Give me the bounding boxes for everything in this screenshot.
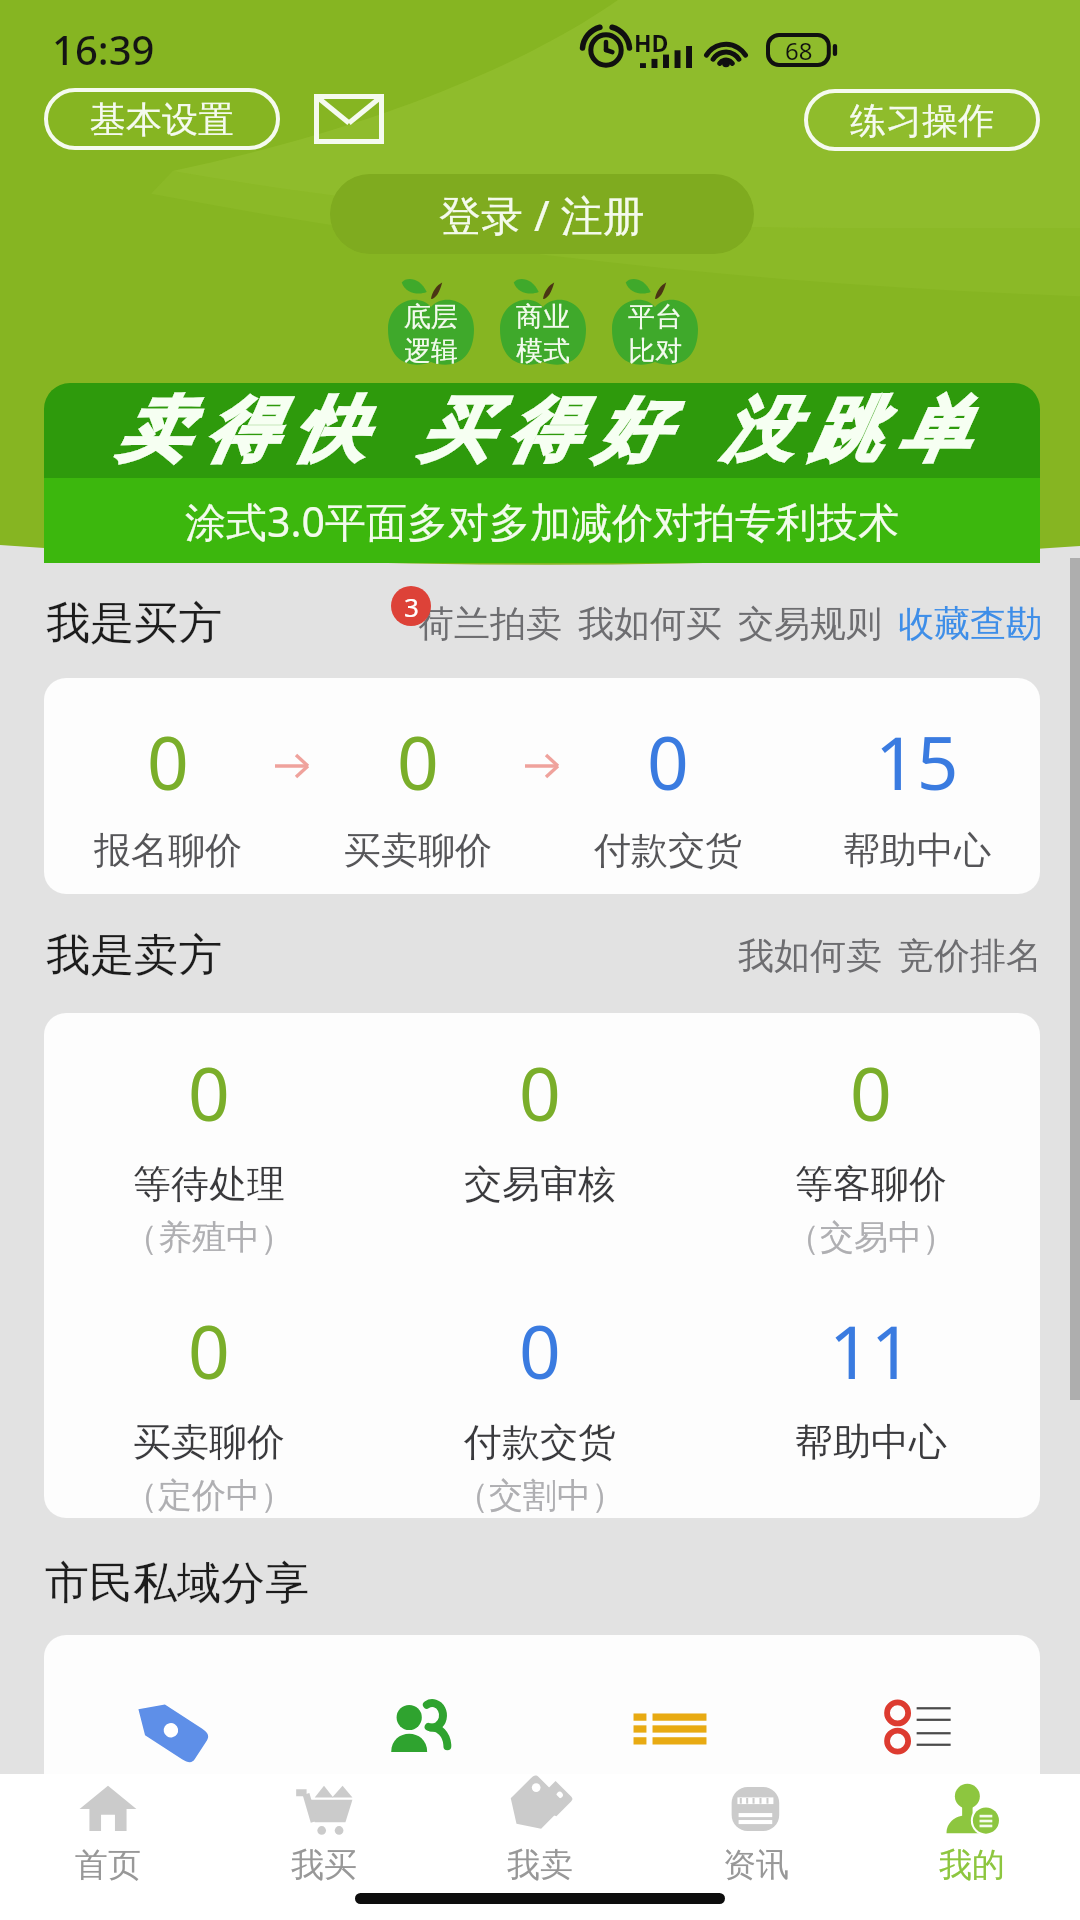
staticText: （交割中）: [455, 1474, 625, 1517]
button[interactable]: 0: [308, 712, 528, 882]
button[interactable]: 0: [58, 712, 278, 882]
staticText: 0: [188, 1043, 230, 1142]
staticText: 16:39: [52, 22, 155, 76]
button[interactable]: 基本设置: [44, 88, 280, 150]
button[interactable]: 收藏查勘: [898, 601, 1042, 646]
staticText: HD: [634, 27, 669, 58]
staticText: 比对: [628, 334, 682, 368]
button[interactable]: 15: [807, 712, 1027, 882]
staticText: 0: [519, 1043, 561, 1142]
button[interactable]: 登录 / 注册: [330, 174, 754, 254]
staticText: 帮助中心: [843, 827, 991, 874]
button[interactable]: 0: [731, 1043, 1011, 1273]
staticText: 登录 / 注册: [439, 186, 645, 243]
button[interactable]: 资讯: [656, 1780, 856, 1896]
staticText: （养殖中）: [124, 1216, 294, 1259]
staticText: 帮助中心: [795, 1418, 947, 1466]
button[interactable]: 我卖: [440, 1780, 640, 1896]
staticText: 涂式3.0平面多对多加减价对拍专利技术: [185, 493, 899, 549]
button[interactable]: 0: [69, 1043, 349, 1273]
staticText: 0: [647, 712, 689, 811]
button[interactable]: 我如何买: [578, 601, 722, 646]
staticText: 我是卖方: [46, 928, 222, 983]
button[interactable]: Group: [384, 1693, 456, 1765]
button[interactable]: Ranking: [884, 1695, 952, 1759]
staticText: 卖得快: [108, 387, 372, 475]
staticText: 68: [785, 34, 813, 67]
staticText: 0: [147, 712, 189, 811]
staticText: 3: [404, 589, 419, 624]
staticText: （交易中）: [786, 1216, 956, 1259]
button[interactable]: 商业: [500, 278, 586, 366]
staticText: 平台: [628, 300, 682, 334]
staticText: 等客聊价: [795, 1160, 947, 1208]
button[interactable]: 底层: [388, 278, 474, 366]
staticText: 付款交货: [594, 827, 742, 874]
staticText: 资讯: [723, 1844, 789, 1886]
staticText: 我是买方: [46, 596, 222, 651]
staticText: 没跳单: [712, 387, 976, 475]
staticText: （定价中）: [124, 1474, 294, 1517]
staticText: 0: [519, 1301, 561, 1400]
staticText: 首页: [75, 1844, 141, 1886]
staticText: 0: [188, 1301, 230, 1400]
staticText: 买卖聊价: [344, 827, 492, 874]
button[interactable]: 0: [558, 712, 778, 882]
staticText: 付款交货: [464, 1418, 616, 1466]
staticText: 模式: [516, 334, 570, 368]
button[interactable]: 0: [69, 1301, 349, 1518]
staticText: 0: [850, 1043, 892, 1142]
button[interactable]: 练习操作: [804, 89, 1040, 151]
staticText: 买得好: [410, 387, 674, 475]
staticText: 我的: [939, 1844, 1005, 1886]
staticText: 我买: [291, 1844, 357, 1886]
staticText: 报名聊价: [94, 827, 242, 874]
staticText: 等待处理: [133, 1160, 285, 1208]
staticText: 基本设置: [90, 97, 234, 142]
button[interactable]: Tag: [131, 1691, 207, 1767]
button[interactable]: 11: [731, 1301, 1011, 1518]
button[interactable]: 我如何卖: [738, 933, 882, 978]
button[interactable]: 我的: [872, 1780, 1072, 1896]
button[interactable]: 0: [400, 1301, 680, 1518]
staticText: 0: [397, 712, 439, 811]
staticText: 买卖聊价: [133, 1418, 285, 1466]
staticText: 我卖: [507, 1844, 573, 1886]
button[interactable]: 交易规则: [738, 601, 882, 646]
button[interactable]: 荷兰拍卖: [418, 601, 562, 646]
button[interactable]: 竞价排名: [898, 933, 1042, 978]
button[interactable]: 0: [400, 1043, 680, 1273]
staticText: 15: [875, 712, 959, 811]
button[interactable]: 首页: [8, 1780, 208, 1896]
staticText: 逻辑: [404, 334, 458, 368]
staticText: 商业: [516, 300, 570, 334]
staticText: 练习操作: [850, 98, 994, 143]
staticText: 11: [829, 1301, 913, 1400]
button[interactable]: 平台: [612, 278, 698, 366]
staticText: 市民私域分享: [45, 1556, 309, 1611]
staticText: 底层: [404, 300, 458, 334]
button[interactable]: Messages: [314, 94, 384, 144]
staticText: 交易审核: [464, 1160, 616, 1208]
button[interactable]: List: [632, 1695, 708, 1761]
button[interactable]: 我买: [224, 1780, 424, 1896]
